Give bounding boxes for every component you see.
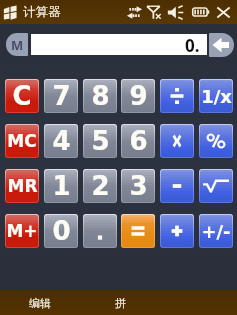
button[interactable]: MC bbox=[5, 124, 39, 158]
staticText: 0 bbox=[52, 216, 71, 246]
button[interactable]: 1/x bbox=[199, 79, 233, 113]
staticText: MC bbox=[7, 131, 37, 151]
button[interactable]: 5 bbox=[83, 124, 117, 158]
button[interactable]: Divide bbox=[160, 79, 194, 113]
button[interactable]: Equals bbox=[121, 214, 155, 248]
button[interactable]: Percent bbox=[199, 124, 233, 158]
staticText: 0. bbox=[185, 34, 200, 55]
button[interactable]: Add bbox=[160, 214, 194, 248]
staticText: M bbox=[11, 36, 24, 54]
staticText: 计算器 bbox=[23, 4, 61, 20]
staticText: 5 bbox=[91, 126, 110, 156]
staticText: 拼 bbox=[115, 296, 126, 310]
staticText: 4 bbox=[52, 126, 71, 156]
button[interactable]: Memory bbox=[6, 33, 28, 56]
button[interactable]: 3 bbox=[121, 169, 155, 203]
button[interactable]: 编辑 bbox=[0, 290, 80, 315]
staticText: M+ bbox=[6, 221, 38, 241]
staticText: 编辑 bbox=[29, 296, 51, 310]
button[interactable]: 1 bbox=[44, 169, 78, 203]
staticText: 1 bbox=[52, 171, 71, 201]
button[interactable]: Backspace bbox=[209, 33, 234, 57]
button[interactable]: 4 bbox=[44, 124, 78, 158]
button[interactable]: 8 bbox=[83, 79, 117, 113]
button[interactable]: Subtract bbox=[160, 169, 194, 203]
button[interactable]: MR bbox=[5, 169, 39, 203]
button[interactable]: 9 bbox=[121, 79, 155, 113]
button[interactable]: Close bbox=[215, 4, 232, 21]
button[interactable]: Decimal point bbox=[83, 214, 117, 248]
staticText: 8 bbox=[91, 81, 110, 111]
staticText: C bbox=[12, 81, 32, 111]
staticText: 6 bbox=[129, 126, 148, 156]
button[interactable]: 拼 bbox=[80, 290, 160, 315]
button[interactable]: 2 bbox=[83, 169, 117, 203]
staticText: 2 bbox=[91, 171, 110, 201]
button[interactable]: Multiply bbox=[160, 124, 194, 158]
button[interactable]: 6 bbox=[121, 124, 155, 158]
staticText: +/- bbox=[201, 221, 231, 242]
button[interactable]: Square root bbox=[199, 169, 233, 203]
button[interactable]: C bbox=[5, 79, 39, 113]
button[interactable]: M+ bbox=[5, 214, 39, 248]
staticText: 3 bbox=[129, 171, 148, 201]
staticText: 1/x bbox=[201, 86, 232, 107]
staticText: 7 bbox=[52, 81, 71, 111]
button[interactable]: 0 bbox=[44, 214, 78, 248]
button[interactable]: 7 bbox=[44, 79, 78, 113]
staticText: MR bbox=[7, 176, 38, 196]
button[interactable]: +/- bbox=[199, 214, 233, 248]
staticText: 9 bbox=[129, 81, 148, 111]
